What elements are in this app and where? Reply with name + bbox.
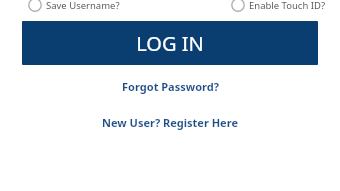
staticText: New User? Register Here [102, 115, 238, 130]
staticText: LOG IN [136, 30, 204, 57]
other: Save Username? [28, 0, 42, 12]
button[interactable]: Enable Touch ID? [231, 0, 326, 12]
other: Enable Touch ID? [231, 0, 245, 12]
button[interactable]: Forgot Password? [0, 75, 340, 97]
staticText: Save Username? [46, 0, 120, 12]
staticText: Forgot Password? [122, 79, 219, 94]
button[interactable]: LOG IN [22, 21, 318, 65]
button[interactable]: Save Username? [28, 0, 120, 12]
staticText: Enable Touch ID? [249, 0, 326, 12]
button[interactable]: New User? Register Here [0, 111, 340, 133]
